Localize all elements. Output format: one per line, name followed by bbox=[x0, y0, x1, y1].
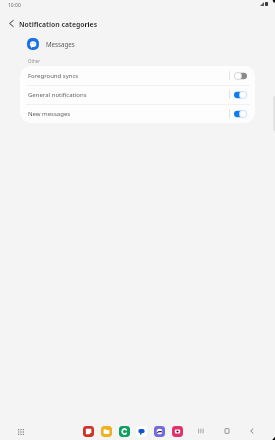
staticText: Messages bbox=[46, 40, 75, 48]
staticText: Foreground syncs bbox=[28, 72, 79, 80]
staticText: General notifications bbox=[28, 91, 87, 99]
button[interactable]: App 5 bbox=[154, 426, 165, 437]
button[interactable]: Apps bbox=[14, 425, 27, 438]
staticText: 10:00 bbox=[8, 2, 21, 9]
button[interactable]: Home bbox=[220, 424, 234, 438]
button[interactable]: App 6 bbox=[172, 426, 183, 437]
button[interactable]: Navigate up bbox=[3, 15, 19, 31]
button[interactable]: App 2 bbox=[101, 426, 112, 437]
button[interactable]: App 1 bbox=[83, 426, 94, 437]
button[interactable]: On bbox=[234, 91, 247, 99]
button[interactable]: On bbox=[234, 110, 247, 118]
staticText: Other bbox=[28, 58, 41, 64]
button[interactable]: App 3 bbox=[119, 426, 130, 437]
button[interactable]: Back bbox=[245, 424, 259, 438]
staticText: New messages bbox=[28, 110, 71, 118]
button[interactable]: Recent apps bbox=[194, 424, 208, 438]
button[interactable]: Off bbox=[234, 72, 247, 80]
staticText: Notification categories bbox=[19, 20, 98, 29]
button[interactable]: App 4 bbox=[136, 426, 147, 437]
button[interactable]: Messages bbox=[0, 34, 275, 54]
button[interactable]: Foreground syncs bbox=[20, 66, 255, 85]
button[interactable]: General notifications bbox=[20, 85, 255, 104]
button[interactable]: New messages bbox=[20, 104, 255, 123]
